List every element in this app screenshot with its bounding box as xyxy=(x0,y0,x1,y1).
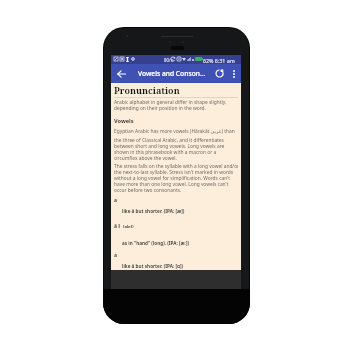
staticText: have more than one long vowel. Long vowe… xyxy=(114,181,229,187)
staticText: Vowels and Conson… xyxy=(138,69,206,78)
staticText: like ă but shorter. (IPA: [æ]) xyxy=(122,208,185,214)
staticText: a xyxy=(114,252,117,259)
staticText: 62% 6:31 am xyxy=(203,57,235,64)
staticText: 80/s xyxy=(164,57,173,63)
staticText: Vowels xyxy=(114,117,134,125)
staticText: The stress falls on the syllable with a … xyxy=(114,163,238,169)
staticText: a xyxy=(114,197,117,204)
staticText: between short and long vowels. Long vowe… xyxy=(114,143,225,149)
staticText: (alef) xyxy=(122,224,134,230)
staticText: shown in this phrasebook with a macron o… xyxy=(114,149,217,155)
staticText: depending on their position in the word. xyxy=(114,105,206,111)
staticText: occur before two consonants. xyxy=(114,187,182,193)
staticText: the three of Classical Arabic, and it di… xyxy=(114,137,224,143)
staticText: Egyptian Arabic has more vowels (Hārakāt… xyxy=(114,128,235,134)
button[interactable]: More options xyxy=(226,64,241,83)
staticText: ā ا xyxy=(114,223,122,230)
staticText: Pronunciation xyxy=(114,84,180,96)
staticText: as in "hand" (long). (IPA: [æː]) xyxy=(122,240,190,246)
button[interactable]: Back xyxy=(113,65,130,83)
button[interactable]: Refresh xyxy=(210,64,229,83)
button[interactable]: Vowels and Conson… xyxy=(131,64,206,83)
staticText: the next-to-last syllable. Stress isn't … xyxy=(114,169,234,175)
staticText: like ă but shorter. (IPA: [ɑ]) xyxy=(122,263,184,269)
staticText: circumflex above the vowel. xyxy=(114,155,177,161)
staticText: Arabic alphabet in general differ in sha… xyxy=(114,99,227,105)
staticText: without a long vowel for simplification.… xyxy=(114,175,230,181)
